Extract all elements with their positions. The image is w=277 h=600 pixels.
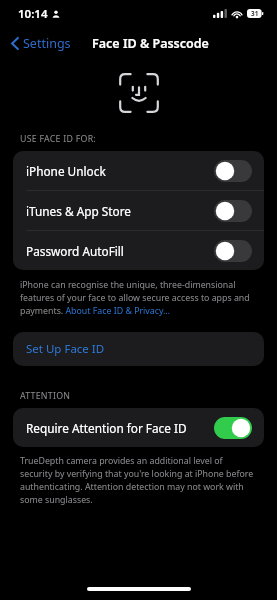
staticText: ATTENTION — [20, 390, 71, 402]
staticText: Set Up Face ID — [26, 341, 105, 357]
staticText: 10:14 — [18, 6, 48, 22]
button[interactable]: Set Up Face ID — [13, 332, 264, 366]
staticText: USE FACE ID FOR: — [20, 133, 96, 145]
staticText: iPhone can recognise the unique, three-d… — [20, 279, 257, 317]
staticText: 31 — [251, 9, 259, 18]
button[interactable]: Back — [7, 31, 75, 56]
button[interactable]: Require Attention for Face ID — [13, 408, 264, 447]
button[interactable]: Password AutoFill — [13, 231, 264, 270]
other: Back — [11, 37, 19, 50]
button[interactable]: iPhone Unlock — [13, 151, 264, 190]
staticText: Password AutoFill — [26, 243, 214, 259]
button[interactable]: iTunes & App Store — [13, 191, 264, 230]
staticText: TrueDepth camera provides an additional … — [20, 455, 257, 506]
staticText: iTunes & App Store — [26, 203, 214, 219]
staticText: Face ID & Passcode — [92, 35, 209, 52]
staticText: Require Attention for Face ID — [26, 420, 214, 436]
staticText: Settings — [23, 35, 71, 52]
staticText: iPhone Unlock — [26, 163, 214, 179]
